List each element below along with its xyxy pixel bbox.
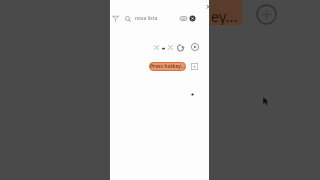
button[interactable]: Clear search — [186, 12, 199, 25]
staticText: Press hotkey... — [150, 63, 186, 70]
button[interactable]: Search — [121, 12, 134, 25]
button[interactable]: Previous and next match — [152, 41, 174, 53]
button[interactable]: Edit hotkey — [189, 61, 200, 72]
button[interactable]: Press hotkey... — [149, 62, 186, 71]
button[interactable]: Press hotkey tooltip — [210, 0, 242, 25]
button[interactable]: Undo — [175, 42, 186, 53]
button[interactable]: Keyboard — [177, 12, 190, 25]
button[interactable]: Add — [255, 3, 277, 25]
staticText: ey... — [211, 6, 238, 25]
button[interactable]: Filter — [109, 12, 122, 25]
staticText: nova lista — [135, 15, 158, 22]
button[interactable]: Record — [189, 41, 201, 53]
